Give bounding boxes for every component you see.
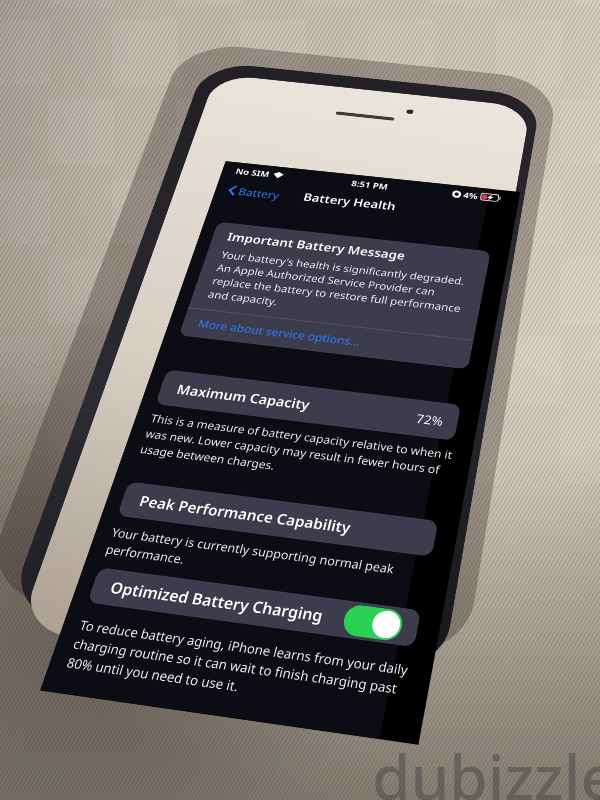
staticText: 8:51 PM [350,178,389,192]
staticText: Battery [237,185,282,202]
staticText: Optimized Battery Charging [107,577,325,626]
button[interactable]: Optimized Battery Charging toggle [341,603,405,642]
staticText: More about service options... [196,316,362,349]
staticText: Important Battery Message [225,229,407,263]
button[interactable]: More about service options... [179,308,473,369]
staticText: 4% [462,189,479,201]
button[interactable]: Battery [223,181,285,204]
button[interactable]: Optimized Battery Charging [87,567,421,647]
staticText: Your battery is currently supporting nor… [104,524,431,599]
staticText: Peak Performance Capability [137,491,353,538]
staticText: To reduce battery aging, iPhone learns f… [65,616,412,718]
button[interactable]: Peak Performance Capability [117,481,439,557]
staticText: This is a measure of battery capacity re… [138,411,454,494]
staticText: No SIM [234,166,271,179]
staticText: Battery Health [302,190,398,214]
staticText: Maximum Capacity [174,380,312,414]
staticText: 72% [415,410,445,429]
button[interactable]: Maximum Capacity [155,369,461,441]
staticText: dubizzle [372,734,600,800]
staticText: Your battery's health is significantly d… [206,248,468,329]
